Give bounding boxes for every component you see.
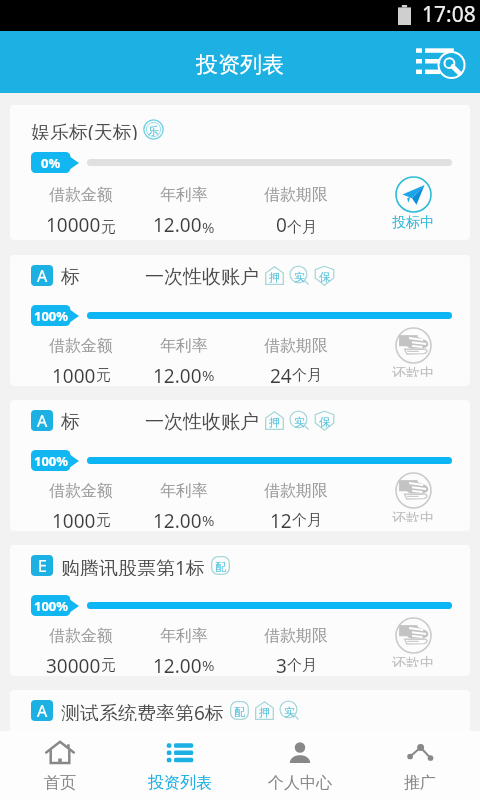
button[interactable]: A: [10, 400, 470, 531]
staticText: 0%: [41, 154, 61, 172]
staticText: 一次性收账户: [145, 410, 259, 431]
staticText: 推广: [404, 773, 436, 793]
button[interactable]: 推广: [360, 731, 480, 800]
staticText: 年利率: [160, 481, 208, 501]
staticText: 元: [101, 218, 116, 237]
staticText: 配: [234, 705, 245, 719]
staticText: 借款期限: [264, 336, 328, 356]
staticText: 实: [294, 270, 305, 284]
staticText: 0: [276, 212, 287, 238]
button[interactable]: 娱乐标(天标): [10, 105, 470, 240]
staticText: 乐: [148, 124, 159, 138]
staticText: 保: [319, 415, 330, 429]
staticText: 实: [284, 705, 295, 719]
staticText: 年利率: [160, 626, 208, 646]
staticText: 押: [259, 705, 270, 719]
staticText: 1000: [52, 508, 96, 531]
button[interactable]: 投资列表: [120, 731, 240, 800]
staticText: 一次性收账户: [145, 265, 259, 286]
staticText: 12: [270, 508, 292, 531]
staticText: 个月: [292, 366, 322, 385]
staticText: 借款金额: [49, 185, 113, 205]
staticText: 个月: [292, 511, 322, 530]
staticText: 12.00: [153, 508, 202, 531]
staticText: 年利率: [160, 336, 208, 356]
staticText: 实: [294, 415, 305, 429]
staticText: 借款期限: [264, 481, 328, 501]
staticText: 借款期限: [264, 626, 328, 646]
staticText: 借款金额: [49, 626, 113, 646]
staticText: 测试系统费率第6标: [61, 700, 224, 721]
staticText: 购腾讯股票第1标: [61, 555, 205, 576]
staticText: 还款中: [392, 365, 434, 377]
staticText: 1000: [52, 363, 96, 386]
button[interactable]: 首页: [0, 731, 120, 800]
button[interactable]: E: [10, 545, 470, 676]
staticText: 12.00: [153, 212, 202, 238]
staticText: 24: [270, 363, 292, 386]
staticText: 30000: [46, 653, 101, 676]
staticText: 元: [96, 366, 111, 385]
staticText: 年利率: [160, 185, 208, 205]
staticText: 投标中: [392, 214, 434, 231]
staticText: 100%: [34, 452, 69, 470]
staticText: %: [202, 655, 215, 675]
staticText: 元: [101, 656, 116, 675]
staticText: 还款中: [392, 510, 434, 522]
staticText: %: [202, 365, 215, 385]
staticText: 标: [61, 265, 80, 286]
staticText: 首页: [44, 773, 76, 793]
staticText: 配: [215, 560, 226, 574]
staticText: 保: [319, 270, 330, 284]
staticText: 元: [96, 511, 111, 530]
staticText: 100%: [34, 597, 69, 615]
staticText: 12.00: [153, 363, 202, 386]
staticText: 押: [269, 415, 280, 429]
staticText: 投资列表: [196, 51, 284, 79]
staticText: 个人中心: [268, 773, 332, 793]
staticText: 10000: [46, 212, 101, 238]
button[interactable]: 个人中心: [240, 731, 360, 800]
staticText: E: [38, 555, 47, 576]
staticText: 12.00: [153, 653, 202, 676]
staticText: 娱乐标(天标): [31, 119, 138, 140]
staticText: 17:08: [422, 0, 476, 29]
staticText: 借款金额: [49, 336, 113, 356]
button[interactable]: A: [10, 255, 470, 386]
staticText: 个月: [287, 656, 317, 675]
staticText: 3: [276, 653, 287, 676]
staticText: A: [37, 700, 48, 721]
staticText: 个月: [287, 218, 317, 237]
staticText: 100%: [34, 307, 69, 325]
staticText: %: [202, 217, 215, 237]
button[interactable]: A: [10, 690, 470, 731]
staticText: 押: [269, 270, 280, 284]
staticText: 标: [61, 410, 80, 431]
staticText: %: [202, 510, 215, 530]
staticText: 借款金额: [49, 481, 113, 501]
staticText: 借款期限: [264, 185, 328, 205]
staticText: 还款中: [392, 655, 434, 667]
staticText: A: [37, 265, 48, 286]
staticText: A: [37, 410, 48, 431]
staticText: 投资列表: [148, 773, 212, 793]
button[interactable]: Search list: [414, 36, 466, 88]
